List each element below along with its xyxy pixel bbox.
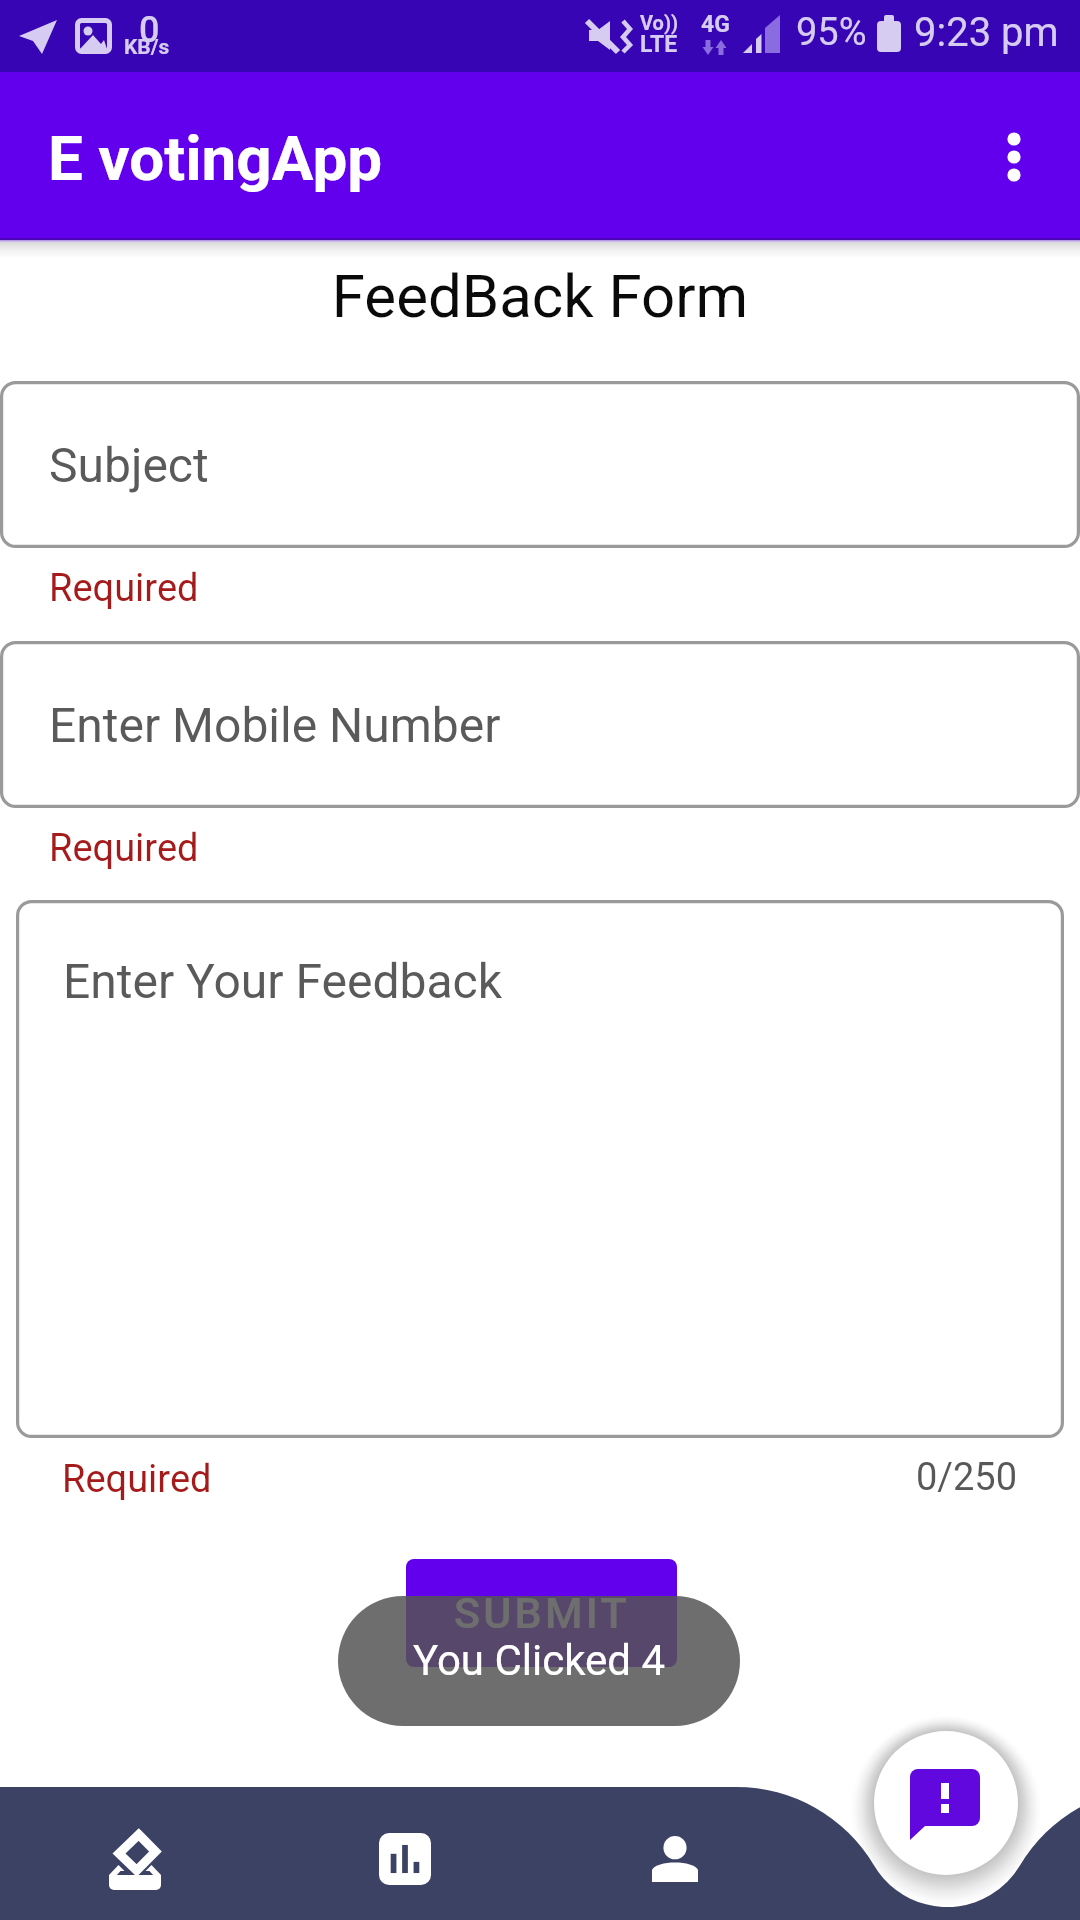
button[interactable]: Feedback [874, 1731, 1018, 1875]
staticText: Subject [49, 437, 209, 493]
button[interactable]: How to vote [0, 1787, 270, 1920]
button[interactable]: Profile [540, 1787, 810, 1920]
staticText: LTE [640, 31, 678, 58]
staticText: E votingApp [48, 122, 383, 195]
staticText: FeedBack Form [0, 261, 1080, 331]
button[interactable]: Results [270, 1787, 540, 1920]
staticText: Vo)) [640, 11, 678, 34]
staticText: Required [49, 826, 199, 871]
staticText: 4G [701, 11, 730, 38]
staticText: 95% [796, 10, 867, 55]
button[interactable]: SUBMIT [406, 1559, 677, 1667]
staticText: Enter Your Feedback [63, 953, 502, 1009]
staticText: Required [62, 1457, 212, 1502]
staticText: 0 [139, 9, 160, 51]
staticText: 9:23 pm [914, 9, 1059, 56]
staticText: You Clicked 4 [413, 1636, 666, 1685]
staticText: KB/s [124, 35, 170, 60]
staticText: SUBMIT [454, 1588, 630, 1638]
staticText: 0/250 [0, 1455, 1017, 1500]
staticText: Required [49, 566, 199, 611]
button[interactable]: More options [970, 112, 1058, 200]
staticText: Enter Mobile Number [49, 697, 501, 753]
